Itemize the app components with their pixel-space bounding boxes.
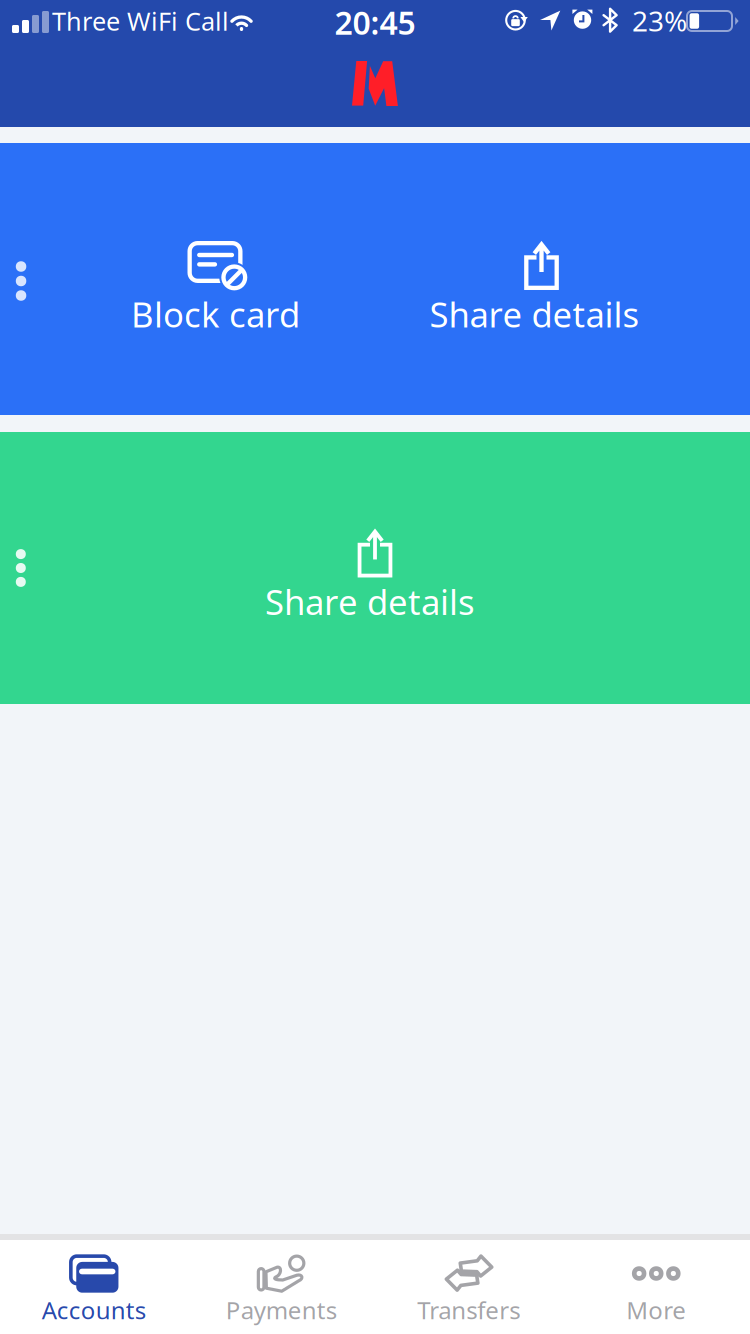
button[interactable]: Block card: [56, 241, 375, 337]
staticText: More: [626, 1294, 686, 1326]
staticText: Block card: [131, 291, 300, 337]
staticText: 20:45: [334, 1, 415, 43]
staticText: Transfers: [417, 1294, 520, 1326]
button[interactable]: Accounts: [0, 1240, 187, 1334]
staticText: Share details: [265, 578, 475, 624]
button[interactable]: More: [562, 1240, 750, 1334]
staticText: Three WiFi Call: [52, 4, 229, 38]
staticText: Payments: [226, 1294, 337, 1326]
button[interactable]: Share details: [270, 529, 480, 624]
staticText: Share details: [429, 291, 639, 337]
button[interactable]: Transfers: [375, 1240, 562, 1334]
button[interactable]: Share details: [375, 241, 694, 337]
staticText: Accounts: [42, 1294, 146, 1326]
staticText: 23%: [632, 2, 687, 39]
button[interactable]: Payments: [187, 1240, 375, 1334]
